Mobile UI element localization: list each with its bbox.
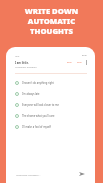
staticText: I'm always late [22, 92, 40, 95]
staticText: I'll make a fool of myself [22, 125, 51, 128]
staticText: 40% [77, 61, 82, 64]
staticText: THOUGHTS [0, 26, 103, 36]
staticText: I am little. [15, 61, 29, 65]
staticText: The shame what you'll care [22, 114, 55, 117]
staticText: 60% [67, 61, 72, 64]
button[interactable]: The shame what you'll care [15, 110, 87, 121]
staticText: I haven't do anything right [22, 81, 54, 84]
button[interactable]: Send [78, 170, 86, 178]
staticText: 97% [82, 54, 87, 57]
button[interactable]: I haven't do anything right [15, 77, 87, 88]
staticText: Unit [15, 55, 20, 58]
button[interactable]: I'll make a fool of myself [15, 121, 87, 132]
staticText: Everyone will look closer to me [22, 103, 59, 106]
button[interactable]: I'm always late [15, 88, 87, 99]
staticText: AUTOMATIC [0, 16, 103, 26]
staticText: Automatic thoughts [15, 66, 37, 69]
button[interactable]: Everyone will look closer to me [15, 99, 87, 110]
staticText: WRITE DOWN [0, 6, 103, 16]
staticText: Automatic thoughts... [16, 173, 78, 176]
